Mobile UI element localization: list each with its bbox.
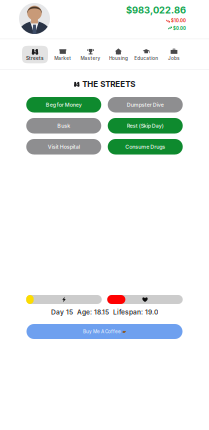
button[interactable]: Visit Hospital bbox=[26, 139, 101, 154]
staticText: Market bbox=[54, 55, 71, 61]
button[interactable]: Market bbox=[50, 46, 76, 63]
button[interactable]: Housing bbox=[105, 46, 131, 63]
staticText: Jobs bbox=[168, 55, 180, 61]
button[interactable]: Mastery bbox=[78, 46, 104, 63]
button[interactable]: Jobs bbox=[161, 46, 187, 63]
staticText: $983,022.86 bbox=[126, 4, 186, 16]
staticText: Education bbox=[134, 55, 158, 61]
staticText: Busk bbox=[57, 122, 70, 129]
staticText: Buy Me A Coffee bbox=[83, 329, 121, 334]
button[interactable]: Rest (Skip Day) bbox=[108, 118, 183, 133]
button[interactable]: Buy Me A Coffee bbox=[26, 324, 182, 339]
button[interactable]: Consume Drugs bbox=[108, 139, 183, 154]
staticText: Consume Drugs bbox=[125, 143, 165, 150]
button[interactable]: Education bbox=[133, 46, 159, 63]
staticText: Dumpster Dive bbox=[127, 101, 164, 108]
button[interactable]: Busk bbox=[26, 118, 101, 133]
staticText: Visit Hospital bbox=[48, 143, 80, 150]
staticText: Rest (Skip Day) bbox=[127, 122, 164, 129]
button[interactable]: Dumpster Dive bbox=[108, 97, 183, 112]
staticText: $0.00 bbox=[173, 26, 186, 31]
staticText: Beg for Money bbox=[46, 101, 82, 108]
staticText: Housing bbox=[109, 55, 128, 61]
button[interactable]: Beg for Money bbox=[26, 97, 101, 112]
staticText: Mastery bbox=[81, 55, 101, 61]
staticText: $10.00 bbox=[171, 18, 186, 23]
staticText: Day 15 Age: 18.15 Lifespan: 19.0 bbox=[51, 308, 158, 316]
button[interactable]: Streets bbox=[22, 46, 48, 63]
staticText: Streets bbox=[26, 55, 44, 61]
staticText: THE STREETS bbox=[82, 79, 135, 89]
